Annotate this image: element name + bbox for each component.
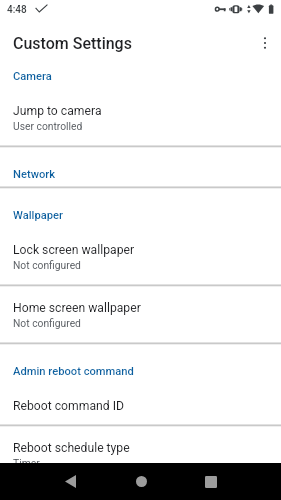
staticText: Reboot schedule type — [13, 441, 130, 455]
button[interactable]: Home — [119, 463, 163, 500]
staticText: Timer — [13, 457, 40, 469]
staticText: Not configured — [13, 259, 81, 271]
staticText: Home screen wallpaper — [13, 301, 141, 315]
staticText: Lock screen wallpaper — [13, 243, 135, 257]
staticText: Camera — [13, 70, 52, 83]
button[interactable]: Lock screen wallpaper — [0, 228, 281, 285]
button[interactable]: Recents — [189, 463, 233, 500]
button[interactable]: Home screen wallpaper — [0, 286, 281, 343]
button[interactable]: Back — [48, 463, 92, 500]
button[interactable]: Reboot schedule type — [0, 426, 281, 483]
button[interactable]: Jump to camera — [0, 89, 281, 146]
staticText: Wallpaper — [13, 209, 63, 222]
staticText: 4:48 — [7, 4, 27, 16]
staticText: Reboot command ID — [13, 399, 125, 413]
staticText: Admin reboot command — [13, 365, 134, 378]
button[interactable]: More options — [250, 28, 280, 58]
staticText: Jump to camera — [13, 104, 102, 118]
button[interactable]: Reboot command ID — [0, 384, 281, 425]
staticText: Not configured — [13, 317, 81, 329]
staticText: User controlled — [13, 120, 83, 132]
staticText: Custom Settings — [13, 34, 132, 53]
staticText: Network — [13, 168, 56, 181]
